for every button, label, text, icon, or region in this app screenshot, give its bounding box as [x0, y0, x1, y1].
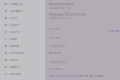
staticText: Update available: [49, 60, 66, 63]
button[interactable]: Activated: [0, 7, 45, 14]
staticText: Calibrated last night: [49, 7, 71, 9]
button[interactable]: Display: [0, 42, 45, 49]
button[interactable]: Alerts: [0, 56, 45, 63]
staticText: Lock: [9, 16, 16, 20]
staticText: and how your data is handled.: [75, 74, 105, 77]
staticText: iOS 18.3.1: [49, 36, 60, 39]
button[interactable]: Camera: [0, 63, 45, 70]
staticText: Not set yet: [49, 51, 61, 54]
button[interactable]: Lights: [0, 21, 45, 28]
staticText: Display: [9, 44, 18, 48]
staticText: Sound: [9, 30, 19, 34]
staticText: Read: [49, 74, 54, 77]
staticText: General: [9, 72, 20, 76]
staticText: Accelerometers: [49, 2, 74, 6]
button[interactable]: Schedule: [0, 49, 45, 56]
staticText: 18.4 Beta 2: [49, 67, 62, 70]
staticText: Check now: [108, 29, 119, 32]
staticText: Analogue Connectivity: [49, 12, 85, 16]
staticText: Camera: [9, 65, 18, 69]
button[interactable]: Alarm: [0, 35, 45, 42]
button[interactable]: Lock: [0, 14, 45, 21]
button[interactable]: Read: [49, 74, 105, 77]
staticText: Activated: [9, 9, 22, 13]
staticText: Software: [49, 27, 59, 30]
staticText: Schedule: [9, 51, 24, 55]
staticText: Updated 4 April 2024: [49, 17, 71, 20]
staticText: more about privacy: [55, 74, 74, 77]
staticText: Assigned region: [49, 44, 65, 47]
button[interactable]: General: [0, 70, 45, 77]
staticText: Charging: [9, 2, 22, 6]
staticText: Alarm: [9, 37, 16, 41]
staticText: Lights: [9, 23, 18, 27]
button[interactable]: Charging: [0, 0, 45, 7]
button[interactable]: Check now: [108, 29, 119, 32]
staticText: Alerts: [9, 58, 17, 62]
button[interactable]: Sound: [0, 28, 45, 35]
